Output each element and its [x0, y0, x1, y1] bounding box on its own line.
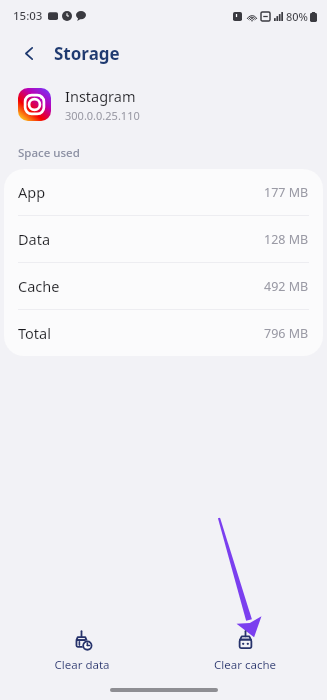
- staticText: Instagram: [65, 86, 136, 106]
- staticText: Cache: [18, 276, 60, 296]
- staticText: Clear data: [54, 657, 110, 673]
- button[interactable]: Data: [4, 216, 323, 263]
- button[interactable]: Clear data: [0, 626, 163, 677]
- staticText: 492 MB: [264, 278, 309, 295]
- staticText: Clear cache: [214, 657, 276, 673]
- staticText: 300.0.0.25.110: [65, 108, 140, 123]
- staticText: 128 MB: [264, 231, 309, 248]
- staticText: Data: [18, 229, 51, 249]
- staticText: 80%: [286, 9, 308, 24]
- button[interactable]: App: [4, 169, 323, 216]
- staticText: 15:03: [13, 8, 43, 24]
- staticText: 796 MB: [264, 325, 309, 342]
- staticText: App: [18, 182, 46, 202]
- staticText: Total: [18, 323, 51, 343]
- button[interactable]: Total: [4, 310, 323, 356]
- button[interactable]: Cache: [4, 263, 323, 310]
- staticText: 177 MB: [264, 184, 309, 201]
- staticText: Storage: [54, 42, 120, 65]
- button[interactable]: Clear cache: [163, 626, 327, 677]
- staticText: Space used: [18, 145, 80, 161]
- button[interactable]: Back: [14, 38, 44, 68]
